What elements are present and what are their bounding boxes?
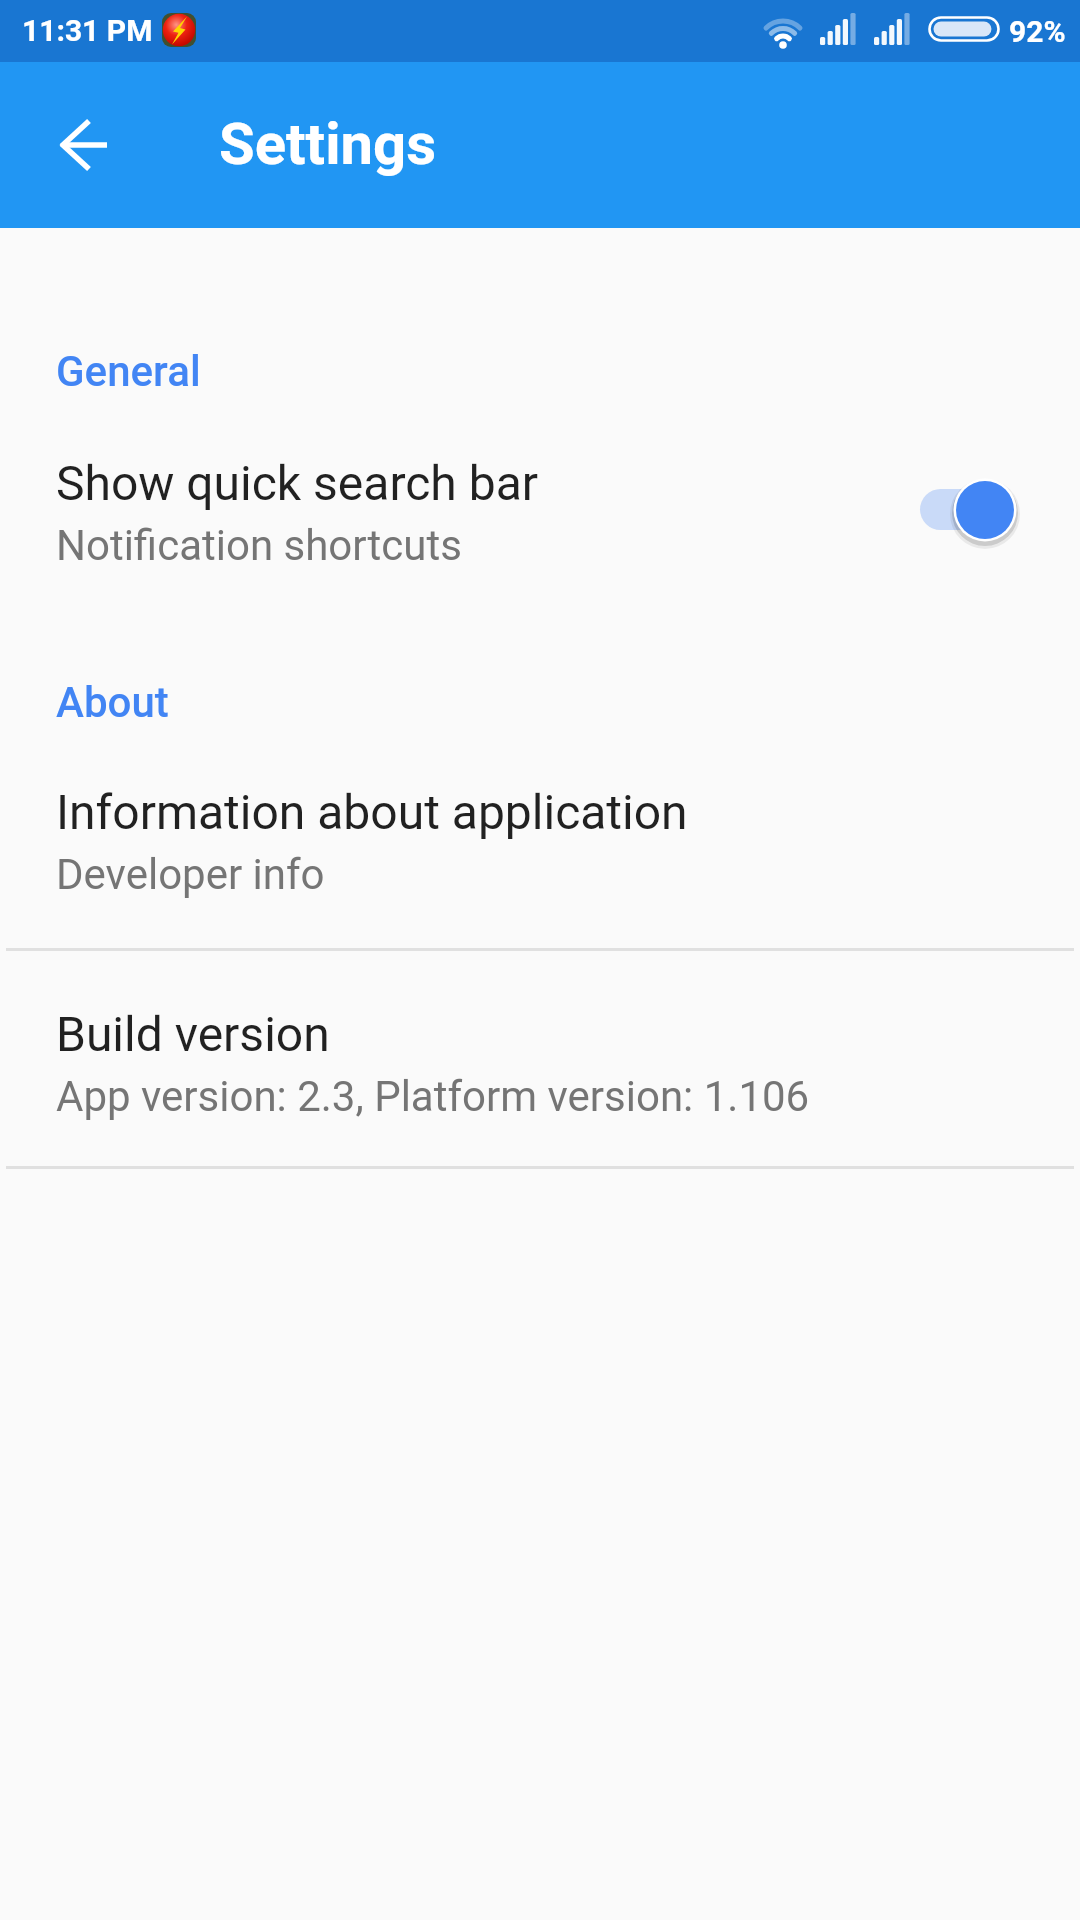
staticText: 92% <box>1009 14 1066 49</box>
button[interactable] <box>48 109 120 181</box>
staticText: 11:31 PM <box>22 13 153 48</box>
button[interactable] <box>916 474 1020 546</box>
staticText: Information about application <box>56 784 688 840</box>
button[interactable]: Show quick search bar <box>0 440 1080 572</box>
staticText: General <box>56 347 201 396</box>
button[interactable]: Information about application <box>0 770 1080 948</box>
staticText: App version: 2.3, Platform version: 1.10… <box>56 1072 810 1121</box>
staticText: Developer info <box>56 850 325 899</box>
staticText: Settings <box>219 110 437 178</box>
button[interactable]: Build version <box>0 992 1080 1166</box>
staticText: Show quick search bar <box>56 455 539 511</box>
staticText: Notification shortcuts <box>56 521 462 570</box>
staticText: Build version <box>56 1006 330 1062</box>
staticText: About <box>56 678 169 727</box>
